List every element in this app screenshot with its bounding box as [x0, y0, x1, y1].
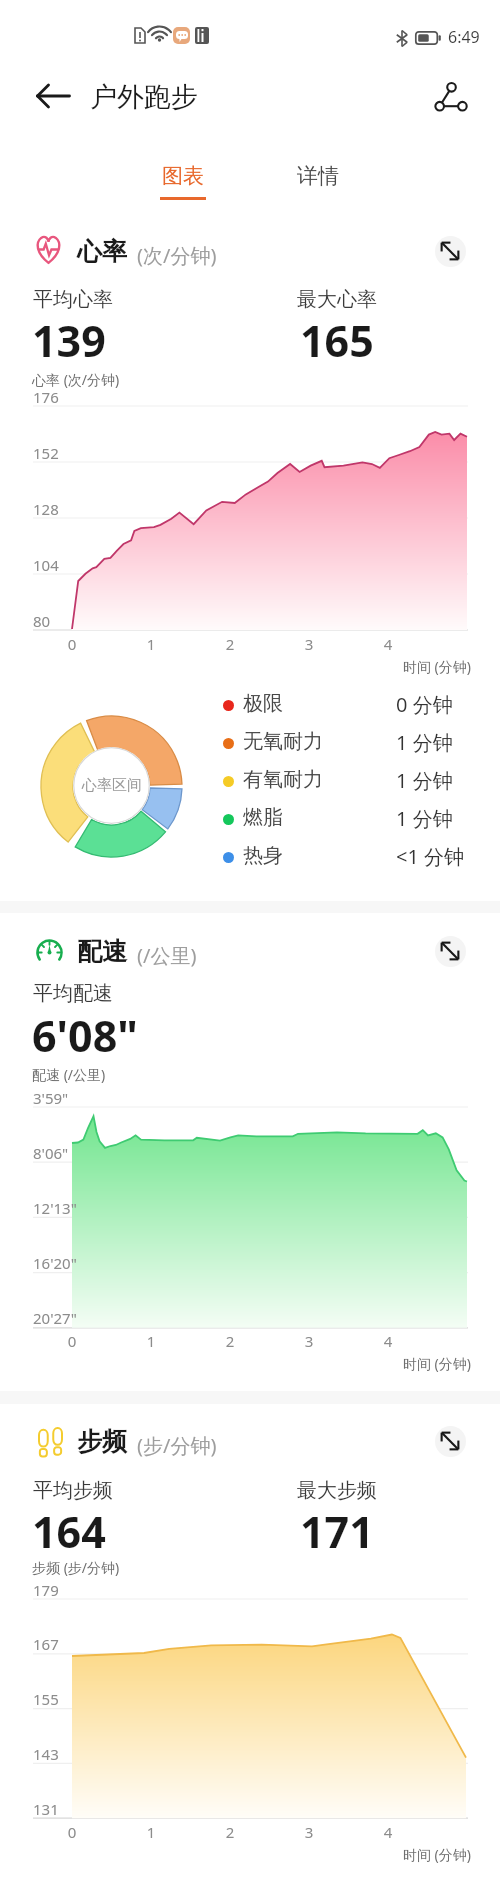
button[interactable]: 无氧耐力: [218, 724, 474, 762]
staticText: 12'13": [33, 1198, 77, 1218]
staticText: 6:49: [448, 26, 480, 48]
staticText: 2: [220, 1822, 240, 1842]
staticText: 详情: [297, 163, 339, 189]
button[interactable]: 热身: [218, 838, 474, 876]
staticText: 配速: [77, 936, 127, 967]
staticText: 极限: [243, 691, 283, 716]
staticText: 139: [32, 311, 106, 370]
staticText: 20'27": [33, 1308, 77, 1328]
staticText: 平均配速: [33, 981, 113, 1006]
staticText: 3: [299, 1331, 319, 1351]
button[interactable]: 图表: [150, 154, 216, 210]
staticText: 热身: [243, 843, 283, 868]
button[interactable]: Expand chart: [429, 930, 471, 972]
staticText: 时间 (分钟): [0, 1354, 471, 1373]
staticText: 3: [299, 1822, 319, 1842]
staticText: 4: [378, 634, 398, 654]
button[interactable]: 有氧耐力: [218, 762, 474, 800]
staticText: 无氧耐力: [243, 729, 323, 754]
button[interactable]: Expand chart: [429, 1420, 471, 1462]
staticText: 80: [33, 611, 51, 631]
staticText: 165: [300, 311, 374, 370]
button[interactable]: 详情: [285, 154, 351, 202]
staticText: 143: [33, 1744, 59, 1764]
staticText: (/公里): [137, 942, 197, 969]
staticText: 3'59": [33, 1088, 69, 1108]
staticText: 心率: [77, 236, 127, 267]
staticText: 2: [220, 1331, 240, 1351]
staticText: 152: [33, 443, 59, 463]
staticText: 171: [300, 1502, 374, 1561]
staticText: 0: [62, 1331, 82, 1351]
staticText: 步频 (步/分钟): [32, 1558, 120, 1577]
button[interactable]: 极限: [218, 686, 474, 724]
staticText: 心率区间: [82, 776, 142, 795]
staticText: 167: [33, 1634, 59, 1654]
staticText: 燃脂: [243, 805, 283, 830]
staticText: 1 分钟: [396, 767, 453, 794]
staticText: 104: [33, 555, 59, 575]
staticText: 1 分钟: [396, 805, 453, 832]
staticText: 3: [299, 634, 319, 654]
staticText: 8'06": [33, 1143, 69, 1163]
staticText: 0 分钟: [396, 691, 453, 718]
staticText: 最大心率: [297, 287, 377, 312]
staticText: 图表: [162, 163, 204, 189]
staticText: 128: [33, 499, 59, 519]
button[interactable]: Expand chart: [429, 230, 471, 272]
staticText: 最大步频: [297, 1478, 377, 1503]
staticText: (次/分钟): [137, 242, 217, 269]
button[interactable]: Back: [28, 71, 78, 121]
staticText: 时间 (分钟): [0, 657, 471, 676]
staticText: 0: [62, 1822, 82, 1842]
staticText: 176: [33, 387, 59, 407]
staticText: 155: [33, 1689, 59, 1709]
staticText: 0: [62, 634, 82, 654]
staticText: 1: [141, 1822, 161, 1842]
staticText: 131: [33, 1799, 59, 1819]
staticText: 平均步频: [33, 1478, 113, 1503]
staticText: 1: [141, 634, 161, 654]
staticText: <1 分钟: [396, 843, 465, 870]
staticText: 1 分钟: [396, 729, 453, 756]
staticText: 1: [141, 1331, 161, 1351]
staticText: 164: [32, 1502, 106, 1561]
button[interactable]: Share: [422, 69, 474, 121]
staticText: 有氧耐力: [243, 767, 323, 792]
staticText: 16'20": [33, 1253, 77, 1273]
staticText: 配速 (/公里): [32, 1065, 106, 1084]
staticText: 户外跑步: [90, 80, 198, 114]
staticText: 2: [220, 634, 240, 654]
staticText: 平均心率: [33, 287, 113, 312]
staticText: 心率 (次/分钟): [32, 370, 120, 389]
button[interactable]: 燃脂: [218, 800, 474, 838]
staticText: (步/分钟): [137, 1432, 217, 1459]
staticText: 4: [378, 1331, 398, 1351]
staticText: 时间 (分钟): [0, 1845, 471, 1864]
staticText: 6'08": [32, 1006, 138, 1065]
staticText: 179: [33, 1580, 59, 1600]
staticText: 步频: [77, 1426, 127, 1457]
staticText: 4: [378, 1822, 398, 1842]
